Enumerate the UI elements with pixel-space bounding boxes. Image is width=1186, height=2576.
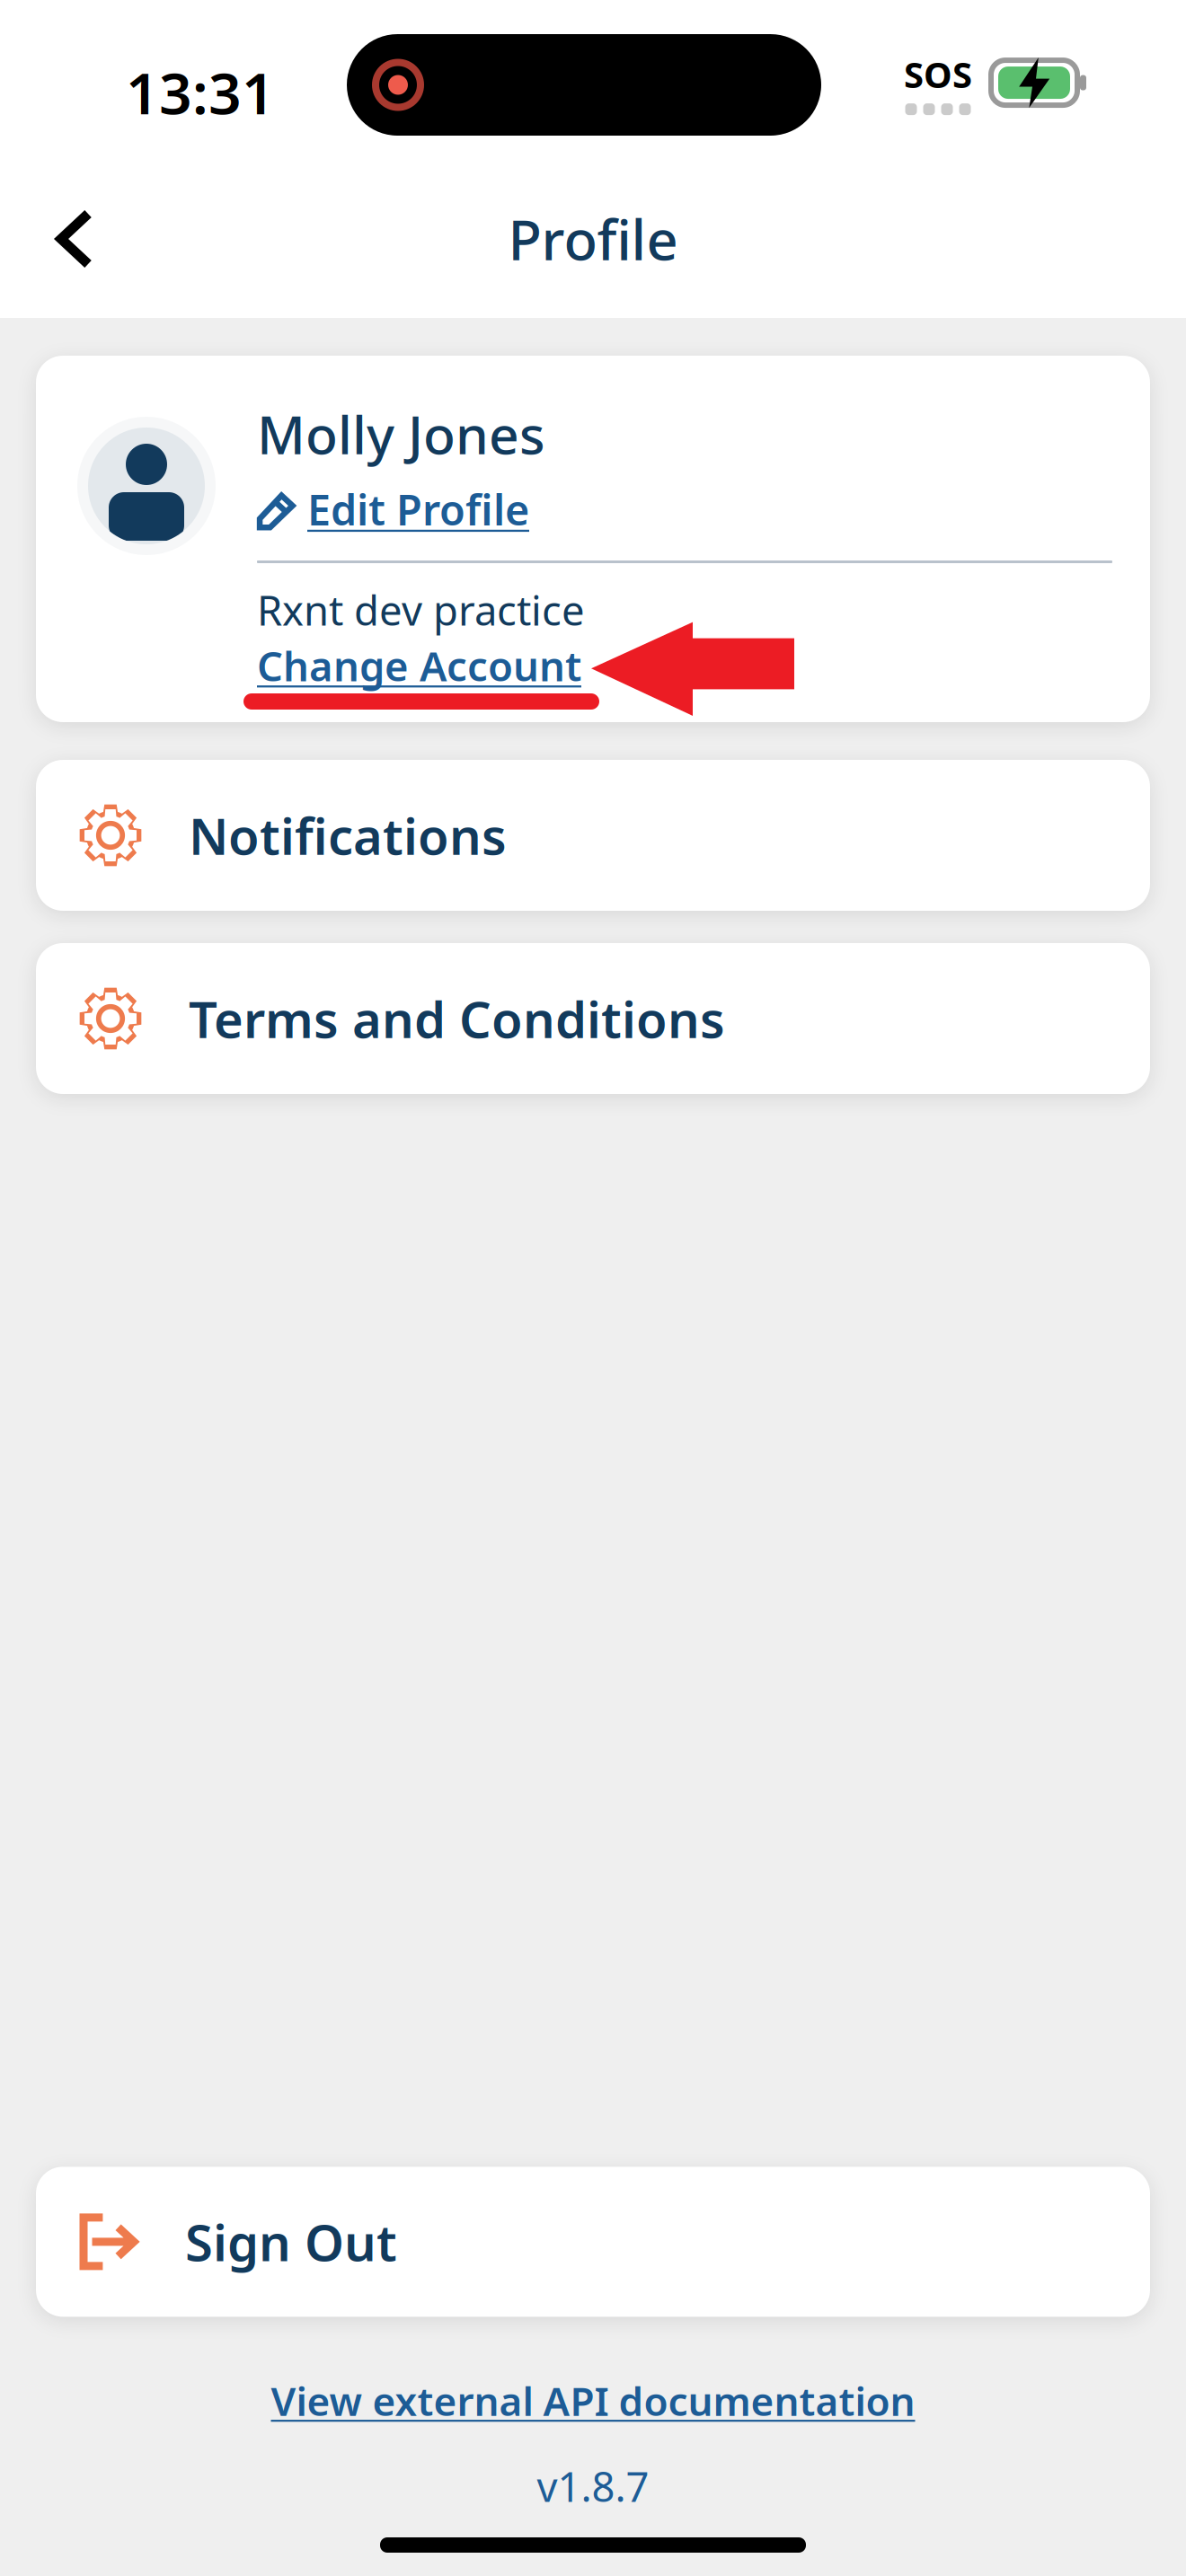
- staticText: Notifications: [189, 802, 507, 869]
- button[interactable]: Change Account: [257, 641, 1112, 690]
- button[interactable]: Edit Profile: [257, 485, 1112, 534]
- staticText: v1.8.7: [537, 2459, 649, 2513]
- button[interactable]: View external API documentation: [271, 2374, 915, 2427]
- staticText: Change Account: [257, 639, 581, 693]
- staticText: Terms and Conditions: [189, 985, 725, 1052]
- staticText: SOS: [904, 50, 972, 98]
- staticText: Sign Out: [185, 2208, 397, 2275]
- staticText: View external API documentation: [271, 2374, 915, 2427]
- staticText: Profile: [508, 202, 678, 275]
- staticText: 13:31: [126, 54, 275, 130]
- button[interactable]: Sign Out: [36, 2167, 1150, 2317]
- button[interactable]: Terms and Conditions: [36, 943, 1150, 1094]
- staticText: Molly Jones: [257, 399, 545, 469]
- staticText: Rxnt dev practice: [257, 583, 585, 637]
- staticText: Edit Profile: [307, 481, 529, 537]
- button[interactable]: Notifications: [36, 760, 1150, 911]
- button[interactable]: Back: [25, 190, 124, 288]
